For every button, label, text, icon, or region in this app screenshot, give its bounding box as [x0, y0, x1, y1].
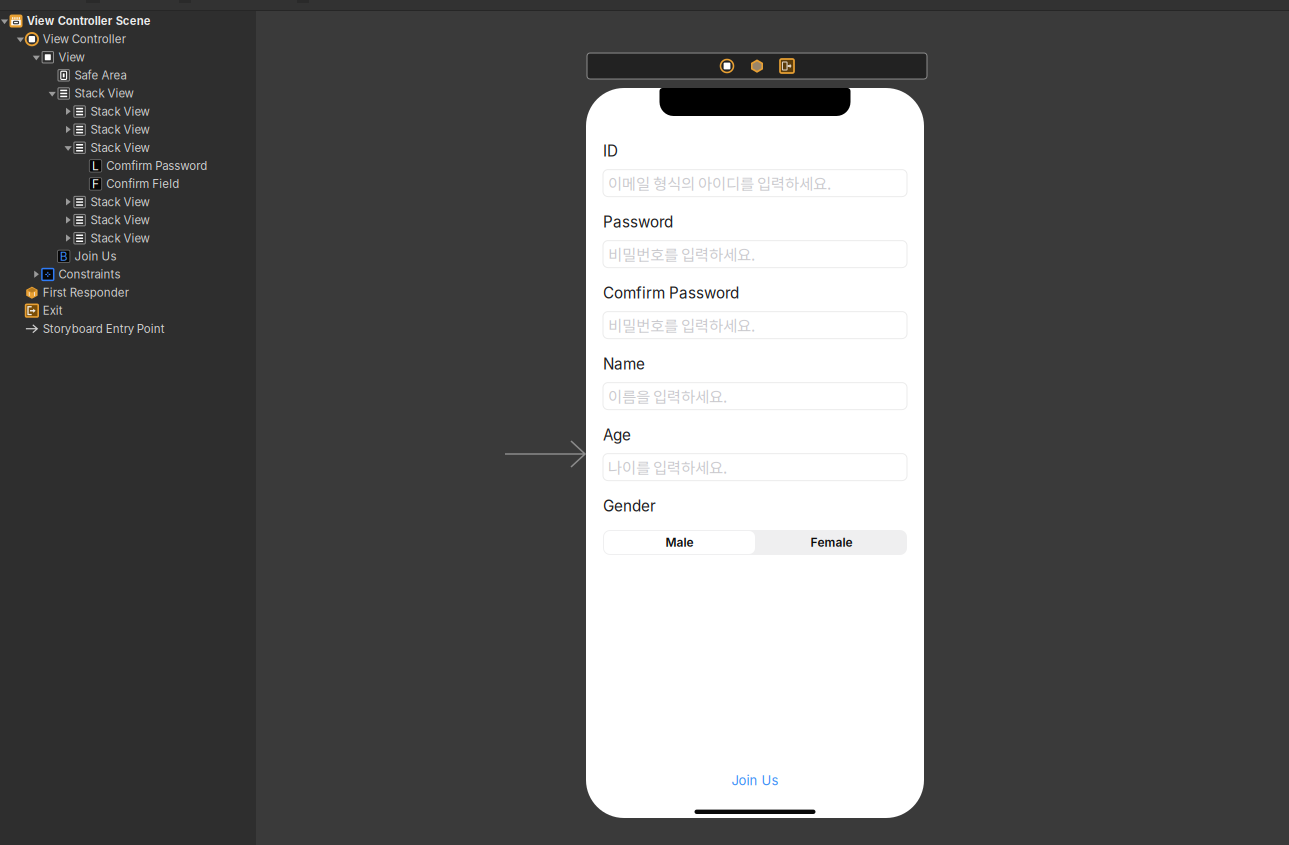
- button[interactable]: First Responder: [0, 283, 256, 302]
- staticText: B: [60, 249, 68, 264]
- button[interactable]: Constraints: [0, 265, 256, 283]
- staticText: Exit: [43, 304, 63, 318]
- button[interactable]: Stack View: [0, 229, 256, 247]
- staticText: Gender: [603, 497, 656, 515]
- staticText: 비밀번호를 입력하세요.: [608, 243, 755, 265]
- staticText: 이메일 형식의 아이디를 입력하세요.: [608, 172, 831, 194]
- button[interactable]: View Controller Scene: [0, 12, 256, 30]
- staticText: Stack View: [90, 231, 149, 245]
- button[interactable]: Stack View: [0, 139, 256, 157]
- staticText: Stack View: [90, 213, 149, 227]
- staticText: Age: [603, 426, 631, 444]
- button[interactable]: Female: [755, 531, 908, 554]
- staticText: View Controller Scene: [27, 14, 151, 28]
- button[interactable]: View Controller: [720, 59, 734, 73]
- button[interactable]: First Responder: [750, 59, 764, 73]
- staticText: 나이를 입력하세요.: [608, 456, 727, 478]
- staticText: Stack View: [90, 105, 149, 118]
- staticText: F: [92, 177, 99, 191]
- button[interactable]: Stack View: [0, 193, 256, 211]
- staticText: Comfirm Password: [106, 159, 207, 173]
- button[interactable]: Stack View: [0, 211, 256, 229]
- staticText: Join Us: [731, 773, 778, 788]
- button[interactable]: Storyboard Entry Point: [0, 320, 256, 338]
- staticText: View: [59, 50, 85, 64]
- button[interactable]: Join Us: [603, 769, 907, 793]
- button[interactable]: Male: [604, 531, 755, 554]
- staticText: Stack View: [90, 141, 149, 155]
- button[interactable]: View: [0, 48, 256, 66]
- staticText: View Controller: [43, 32, 126, 46]
- button[interactable]: Exit: [780, 59, 794, 73]
- staticText: Join Us: [74, 249, 116, 263]
- staticText: Stack View: [90, 195, 149, 209]
- staticText: Comfirm Password: [603, 284, 739, 302]
- staticText: Male: [665, 535, 693, 550]
- staticText: Stack View: [90, 123, 149, 137]
- staticText: Password: [603, 213, 673, 231]
- button[interactable]: Stack View: [0, 121, 256, 139]
- staticText: Confirm Field: [106, 177, 179, 191]
- button[interactable]: B: [0, 247, 256, 265]
- staticText: Name: [603, 355, 645, 373]
- staticText: Storyboard Entry Point: [43, 322, 165, 336]
- staticText: 이름을 입력하세요.: [608, 385, 727, 407]
- staticText: Safe Area: [74, 68, 126, 82]
- button[interactable]: Safe Area: [0, 66, 256, 84]
- button[interactable]: L: [0, 157, 256, 175]
- staticText: L: [92, 159, 99, 173]
- staticText: Stack View: [74, 86, 133, 100]
- button[interactable]: Stack View: [0, 84, 256, 102]
- staticText: First Responder: [43, 286, 129, 299]
- button[interactable]: Stack View: [0, 102, 256, 121]
- button[interactable]: View Controller: [0, 30, 256, 48]
- button[interactable]: F: [0, 175, 256, 193]
- staticText: ID: [603, 142, 618, 160]
- staticText: Female: [810, 535, 852, 550]
- button[interactable]: Exit: [0, 302, 256, 320]
- staticText: Constraints: [59, 267, 121, 281]
- staticText: 비밀번호를 입력하세요.: [608, 314, 755, 336]
